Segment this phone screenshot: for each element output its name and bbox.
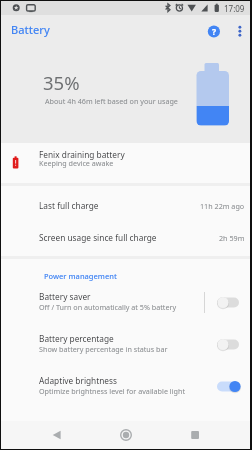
staticText: 11h 22m ago [200, 201, 245, 211]
button[interactable]: Fenix draining battery [1, 143, 250, 183]
button[interactable]: Adaptive brightness [1, 368, 250, 410]
staticText: Battery [11, 22, 50, 37]
button[interactable]: Battery percentage [1, 326, 250, 368]
button[interactable]: Recents [181, 421, 209, 449]
button[interactable]: Battery percentage [211, 326, 252, 368]
staticText: Battery saver [39, 291, 91, 302]
staticText: 35% [43, 70, 80, 95]
button[interactable]: Battery saver [211, 284, 252, 326]
staticText: Optimize brightness level for available … [39, 386, 185, 396]
staticText: Last full charge [39, 200, 99, 211]
staticText: Off / Turn on automatically at 5% batter… [39, 302, 177, 312]
button[interactable]: Home [112, 421, 140, 449]
button[interactable]: Last full charge [1, 186, 250, 221]
button[interactable]: More options [230, 21, 250, 41]
button[interactable]: Battery saver [1, 284, 250, 326]
button[interactable]: Help [204, 21, 224, 41]
staticText: Adaptive brightness [39, 375, 117, 386]
staticText: 2h 59m [219, 233, 245, 243]
staticText: Battery percentage [39, 333, 114, 344]
staticText: Power management [44, 271, 117, 281]
staticText: Keeping device awake [39, 158, 114, 168]
staticText: 17:09 [224, 3, 245, 14]
staticText: Show battery percentage in status bar [39, 344, 168, 354]
button[interactable]: Screen usage since full charge [1, 221, 250, 256]
staticText: Screen usage since full charge [39, 232, 157, 243]
staticText: ? [212, 26, 217, 38]
button[interactable]: Adaptive brightness [211, 368, 252, 410]
button[interactable]: Back [43, 421, 252, 449]
staticText: About 4h 46m left based on your usage [45, 96, 178, 106]
staticText: Fenix draining battery [39, 149, 125, 160]
